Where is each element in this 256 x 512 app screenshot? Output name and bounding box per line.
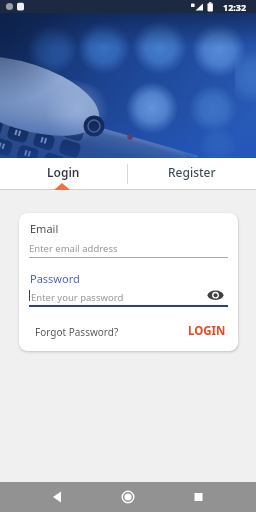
staticText: Register <box>168 164 216 180</box>
staticText: Forgot Password? <box>35 325 119 339</box>
staticText: Password <box>30 271 80 286</box>
button[interactable]: LOGIN <box>188 323 226 339</box>
staticText: LOGIN <box>188 323 226 339</box>
button[interactable] <box>0 482 86 512</box>
staticText: Email <box>30 221 59 236</box>
staticText: Enter email address <box>29 242 118 255</box>
button[interactable]: Register <box>128 158 256 185</box>
button[interactable]: Login <box>0 158 127 185</box>
staticText: Enter your password <box>31 291 124 304</box>
button[interactable] <box>171 482 256 512</box>
button[interactable] <box>86 482 171 512</box>
staticText: Login <box>47 164 80 180</box>
staticText: 12:32 <box>223 1 247 13</box>
button[interactable]: Forgot Password? <box>35 325 119 339</box>
